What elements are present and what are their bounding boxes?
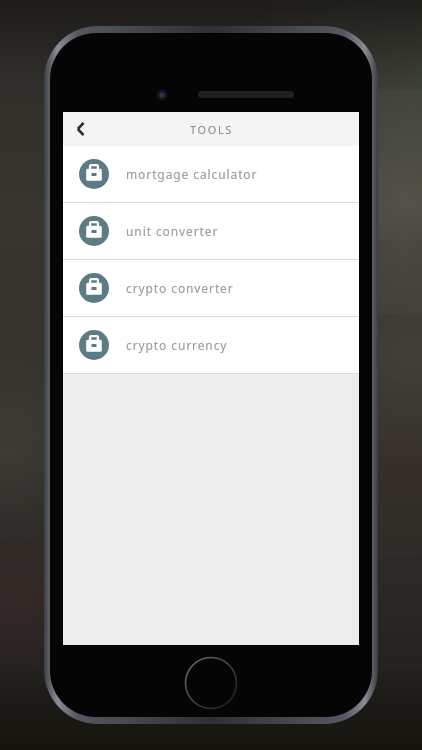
button[interactable]: crypto converter: [63, 260, 359, 316]
button[interactable]: mortgage calculator: [63, 146, 359, 202]
staticText: TOOLS: [190, 122, 233, 137]
staticText: crypto converter: [126, 280, 234, 296]
staticText: mortgage calculator: [126, 166, 258, 182]
button[interactable]: Back: [63, 112, 99, 146]
staticText: crypto currency: [126, 337, 228, 353]
button[interactable]: crypto currency: [63, 317, 359, 373]
button[interactable]: unit converter: [63, 203, 359, 259]
staticText: unit converter: [126, 223, 219, 239]
